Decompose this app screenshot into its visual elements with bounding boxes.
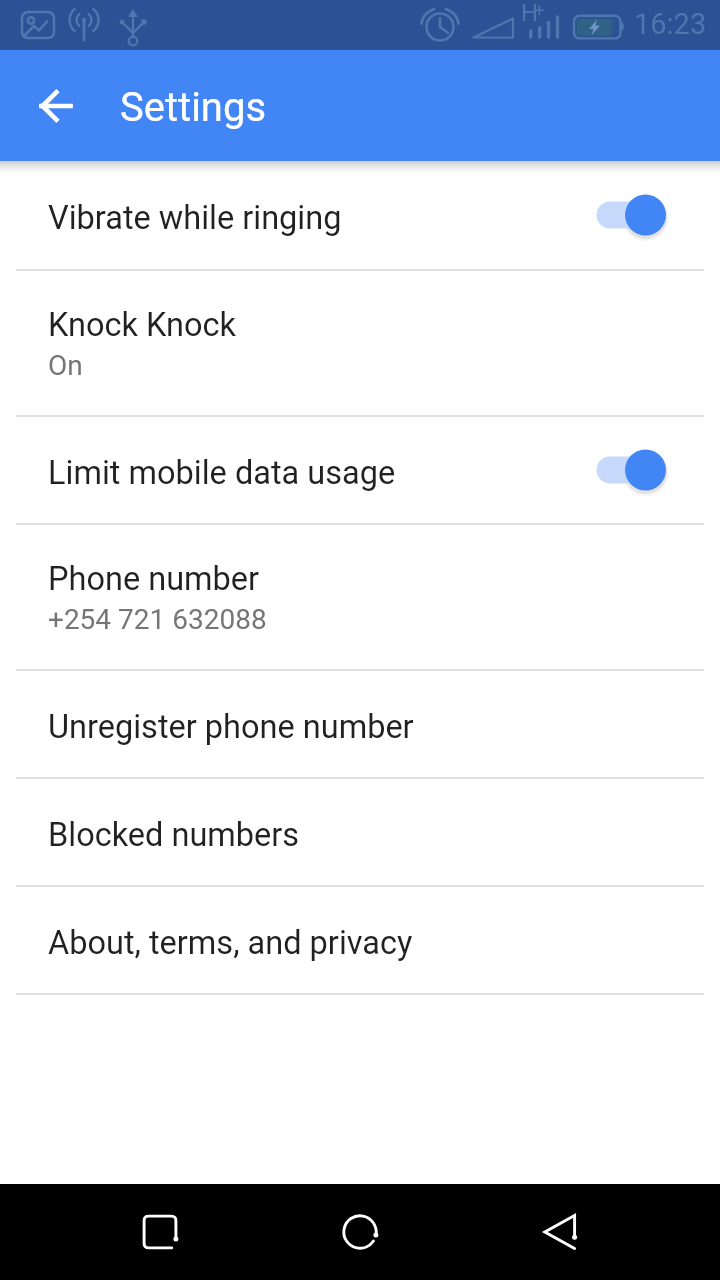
button[interactable]: Phone number [0,525,720,669]
staticText: Limit mobile data usage [48,454,396,492]
staticText: Phone number [48,560,260,598]
button[interactable]: About, terms, and privacy [0,887,720,993]
button[interactable]: Home [320,1192,400,1272]
staticText: Vibrate while ringing [48,199,342,237]
button[interactable]: Recent apps [120,1192,200,1272]
button[interactable]: Knock Knock [0,271,720,415]
button[interactable]: Limit mobile data usage [0,417,720,523]
staticText: Unregister phone number [48,708,414,746]
staticText: 16:23 [634,7,707,41]
button[interactable]: Limit mobile data usage, on [592,442,672,498]
button[interactable]: Unregister phone number [0,671,720,777]
staticText: +254 721 632088 [48,603,267,636]
button[interactable]: Vibrate while ringing [0,161,720,269]
staticText: Blocked numbers [48,816,300,854]
button[interactable]: Blocked numbers [0,779,720,885]
staticText: Knock Knock [48,306,237,344]
staticText: On [48,349,83,382]
button[interactable]: Vibrate while ringing, on [592,187,672,243]
staticText: About, terms, and privacy [48,924,413,962]
button[interactable]: Back [520,1192,600,1272]
staticText: H [521,0,539,27]
button[interactable]: Back [24,74,88,138]
staticText: Settings [120,84,267,131]
staticText: + [534,0,545,20]
